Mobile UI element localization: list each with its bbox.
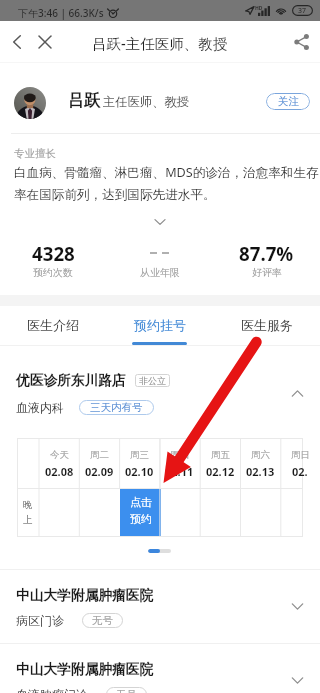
staticText: 预约挂号 xyxy=(134,317,186,333)
staticText: 晚 xyxy=(23,499,33,511)
staticText: 好评率 xyxy=(252,266,282,279)
button[interactable]: Share xyxy=(289,29,315,55)
button[interactable]: Expand xyxy=(287,596,308,617)
staticText: 02.12 xyxy=(206,464,235,479)
staticText: 中山大学附属肿瘤医院 xyxy=(16,661,153,678)
staticText: 吕跃-主任医师、教授 xyxy=(92,33,228,53)
staticText: 血液肿瘤门诊 xyxy=(16,687,88,693)
staticText: 三天内有号 xyxy=(90,401,143,414)
staticText: 非公立 xyxy=(139,375,166,386)
staticText: 无号 xyxy=(92,614,113,627)
staticText: 周日 xyxy=(291,449,310,461)
staticText: 上 xyxy=(23,514,33,526)
button[interactable]: Back xyxy=(4,29,30,55)
button[interactable]: 预约挂号 xyxy=(106,306,213,346)
staticText: 周三 xyxy=(130,449,149,461)
staticText: 87.7% xyxy=(239,241,294,266)
staticText: 周四 xyxy=(170,449,189,461)
staticText: 病区门诊 xyxy=(16,613,64,628)
staticText: HD xyxy=(255,5,263,12)
staticText: 周二 xyxy=(90,449,109,461)
staticText: 吕跃 xyxy=(68,91,100,111)
staticText: 02.09 xyxy=(85,464,114,479)
staticText: 02.13 xyxy=(246,464,275,479)
staticText: 4328 xyxy=(32,241,75,266)
staticText: 02.10 xyxy=(125,464,154,479)
staticText: 医生介绍 xyxy=(27,317,79,333)
staticText: 预约 xyxy=(130,512,152,526)
button[interactable]: 关注 xyxy=(266,93,310,110)
staticText: 优医诊所东川路店 xyxy=(16,372,126,389)
staticText: 血液内科 xyxy=(16,400,64,415)
staticText: 02. xyxy=(292,464,308,479)
button[interactable]: 医生服务 xyxy=(213,306,320,346)
staticText: 周五 xyxy=(211,449,230,461)
button[interactable]: 医生介绍 xyxy=(0,306,106,346)
staticText: 点击 xyxy=(130,495,152,509)
staticText: 周六 xyxy=(251,449,270,461)
staticText: 中山大学附属肿瘤医院 xyxy=(16,587,153,604)
staticText: 关注 xyxy=(278,95,299,108)
button[interactable]: Expand description xyxy=(0,214,320,230)
staticText: 无号 xyxy=(116,688,137,693)
staticText: 下午3:46 | 66.3K/s xyxy=(18,6,104,20)
staticText: 白血病、骨髓瘤、淋巴瘤、MDS的诊治，治愈率和生存率在国际前列，达到国际先进水平… xyxy=(14,164,320,203)
staticText: 主任医师、教授 xyxy=(103,94,190,109)
staticText: 02.08 xyxy=(45,464,74,479)
staticText: 专业擅长 xyxy=(14,147,56,160)
staticText: 预约次数 xyxy=(33,266,73,279)
button[interactable]: Expand xyxy=(287,670,308,691)
staticText: 37 xyxy=(298,6,307,16)
staticText: 今天 xyxy=(50,449,69,461)
button[interactable]: 点击 xyxy=(120,488,161,537)
button[interactable]: Collapse xyxy=(287,383,308,404)
staticText: 医生服务 xyxy=(241,317,293,333)
button[interactable]: Close xyxy=(32,29,58,55)
staticText: 02.11 xyxy=(165,464,194,479)
staticText: 从业年限 xyxy=(140,266,180,279)
